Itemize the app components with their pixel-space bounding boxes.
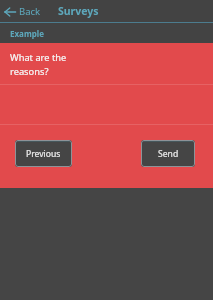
other: Back <box>4 6 16 18</box>
staticText: What are the reasons? <box>10 51 72 78</box>
staticText: Example <box>10 28 44 39</box>
staticText: Send <box>158 148 179 160</box>
staticText: Back <box>19 5 41 18</box>
button[interactable]: Send <box>141 140 195 167</box>
button[interactable]: Back <box>0 5 45 18</box>
button[interactable]: Previous <box>15 140 72 167</box>
staticText: Previous <box>26 148 61 160</box>
staticText: Surveys <box>58 4 99 18</box>
